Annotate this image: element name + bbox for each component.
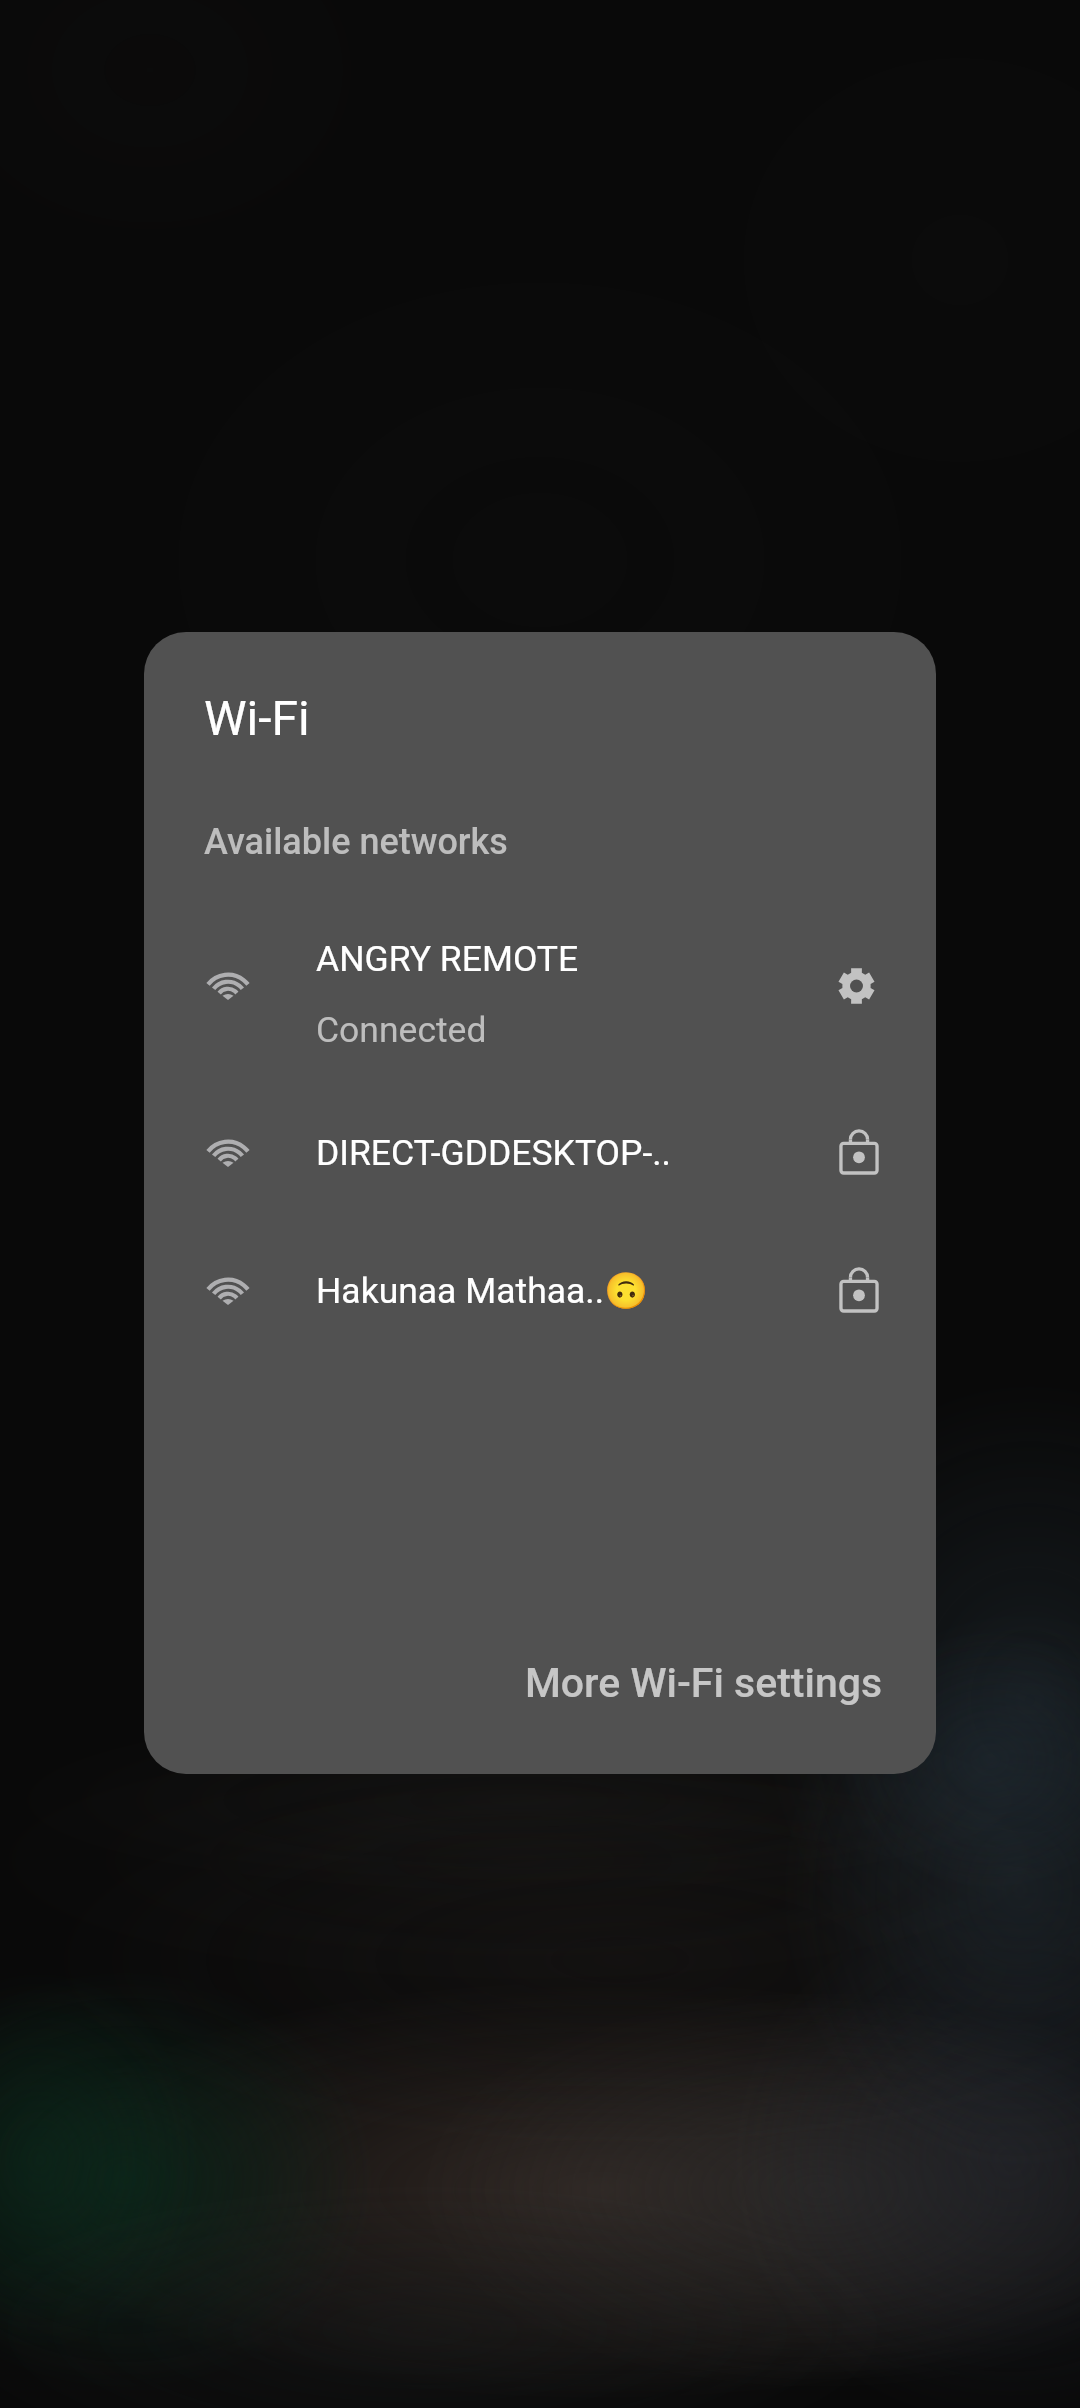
- button[interactable]: Hakunaa Mathaa..🙃: [144, 1221, 936, 1345]
- staticText: Hakunaa Mathaa..🙃: [316, 1270, 649, 1312]
- button[interactable]: Secured network: [809, 1096, 909, 1204]
- staticText: Available networks: [204, 821, 508, 863]
- button[interactable]: Secured network: [809, 1234, 909, 1342]
- staticText: ANGRY REMOTE: [316, 938, 579, 980]
- staticText: DIRECT-GDDESKTOP-..: [316, 1132, 671, 1174]
- button[interactable]: Network settings: [807, 936, 906, 1036]
- button[interactable]: DIRECT-GDDESKTOP-..: [144, 1083, 936, 1207]
- button[interactable]: More Wi-Fi settings: [493, 1620, 893, 1736]
- staticText: Connected: [316, 1009, 487, 1051]
- staticText: Wi-Fi: [204, 690, 310, 746]
- button[interactable]: ANGRY REMOTE: [144, 916, 936, 1056]
- staticText: More Wi-Fi settings: [525, 1659, 883, 1707]
